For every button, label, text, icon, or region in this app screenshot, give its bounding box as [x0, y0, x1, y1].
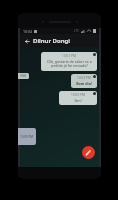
- button[interactable]: 10:01 PM: [41, 52, 97, 71]
- button[interactable]: 10:05 PM: [59, 91, 97, 105]
- button[interactable]: 10:09 PM: [18, 128, 36, 145]
- staticText: 10:05 PM: [71, 93, 85, 97]
- staticText: LTE: [74, 29, 79, 33]
- staticText: Olá, gostaria de saber se o pedido já fo…: [47, 59, 92, 69]
- staticText: Sim!: [74, 98, 82, 103]
- staticText: 9:58: [20, 74, 26, 78]
- staticText: 10:09 PM: [20, 135, 33, 139]
- staticText: Dilnur Dongi: [33, 37, 70, 45]
- button[interactable]: 10:02 PM: [71, 74, 97, 88]
- button[interactable]: Compose message: [82, 146, 95, 159]
- staticText: 10:02 PM: [77, 76, 91, 80]
- staticText: 10:04: [23, 29, 32, 34]
- button[interactable]: Back: [23, 37, 31, 45]
- staticText: Bom dia!: [76, 81, 92, 86]
- button[interactable]: 9:58: [18, 73, 29, 79]
- staticText: 10:01 PM: [62, 54, 76, 58]
